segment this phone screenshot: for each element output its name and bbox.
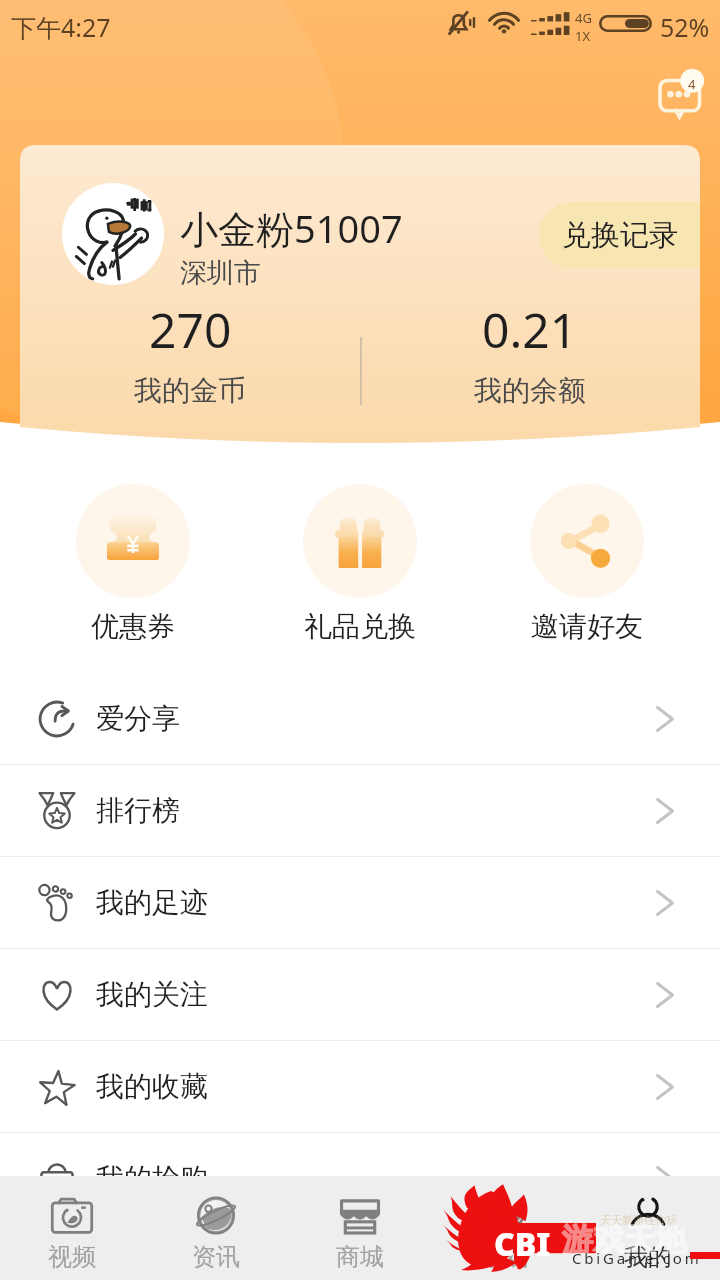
staticText: 270 [149, 297, 232, 362]
button[interactable]: 视频 [0, 1176, 144, 1280]
button[interactable]: 爱分享 [0, 673, 720, 764]
staticText: 游戏 [480, 1242, 528, 1272]
staticText: 深圳市 [180, 256, 261, 290]
staticText: 1X [575, 27, 591, 45]
button[interactable]: 商城 [288, 1176, 432, 1280]
button[interactable]: 我的 [576, 1176, 720, 1280]
staticText: 我的 [624, 1242, 672, 1272]
staticText: 我的余额 [474, 373, 586, 408]
staticText: 优惠券 [91, 609, 175, 644]
staticText: 邀请好友 [531, 609, 643, 644]
staticText: 我的收藏 [96, 1069, 208, 1104]
staticText: CBI [494, 1222, 551, 1266]
button[interactable]: 资讯 [144, 1176, 288, 1280]
staticText: 我的足迹 [96, 885, 208, 920]
staticText: 我的金币 [134, 373, 246, 408]
button[interactable]: 我的足迹 [0, 857, 720, 948]
staticText: 下午4:27 [11, 10, 111, 44]
staticText: 0.21 [482, 297, 578, 362]
button[interactable]: Messages [652, 74, 702, 120]
button[interactable]: 兑换记录 [539, 202, 700, 268]
button[interactable]: 排行榜 [0, 765, 720, 856]
button[interactable]: 邀请好友 [473, 484, 700, 644]
button[interactable]: 礼品兑换 [246, 484, 473, 644]
staticText: 商城 [336, 1242, 384, 1272]
button[interactable]: 优惠券 [20, 484, 246, 644]
staticText: 4 [688, 75, 696, 93]
staticText: 4G [575, 9, 592, 27]
staticText: 爱分享 [96, 701, 180, 736]
button[interactable]: 游戏 [432, 1176, 576, 1280]
staticText: 我的关注 [96, 977, 208, 1012]
staticText: 小金粉51007 [180, 202, 403, 254]
staticText: 52% [660, 10, 710, 44]
staticText: 礼品兑换 [304, 609, 416, 644]
button[interactable]: 我的收藏 [0, 1041, 720, 1132]
staticText: 资讯 [192, 1242, 240, 1272]
staticText: 游戏天地 [562, 1220, 686, 1259]
staticText: 排行榜 [96, 793, 180, 828]
staticText: 我的抢购 [96, 1161, 208, 1196]
staticText: 兑换记录 [562, 217, 678, 254]
staticText: CbiGame.com [572, 1248, 702, 1268]
button[interactable]: 我的抢购 [0, 1133, 720, 1224]
staticText: 天天新游任你玩 [600, 1213, 677, 1227]
button[interactable]: 我的关注 [0, 949, 720, 1040]
staticText: 视频 [48, 1242, 96, 1272]
